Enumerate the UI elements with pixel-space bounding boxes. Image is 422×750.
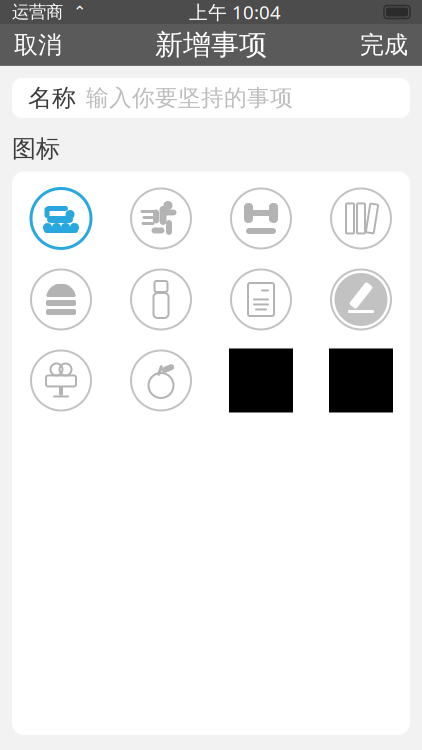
staticText: 完成: [360, 30, 408, 60]
button[interactable]: 取消: [0, 22, 76, 68]
staticText: 名称: [28, 83, 76, 113]
button[interactable]: [329, 267, 393, 331]
staticText: 图标: [12, 134, 60, 163]
staticText: ⌃: [63, 3, 86, 21]
staticText: 运营商: [12, 1, 63, 23]
button[interactable]: [229, 186, 293, 250]
staticText: 新增事项: [155, 28, 267, 62]
button[interactable]: [129, 348, 193, 412]
button[interactable]: [129, 186, 193, 250]
button[interactable]: [329, 186, 393, 250]
button[interactable]: [29, 348, 93, 412]
staticText: 输入你要坚持的事项: [86, 84, 293, 112]
button[interactable]: [129, 267, 193, 331]
button[interactable]: [29, 186, 93, 250]
staticText: 上午 10:04: [189, 0, 281, 24]
button[interactable]: [29, 267, 93, 331]
button[interactable]: [229, 267, 293, 331]
button[interactable]: 完成: [346, 22, 422, 68]
staticText: 取消: [14, 30, 62, 60]
button[interactable]: 名称: [12, 78, 410, 118]
